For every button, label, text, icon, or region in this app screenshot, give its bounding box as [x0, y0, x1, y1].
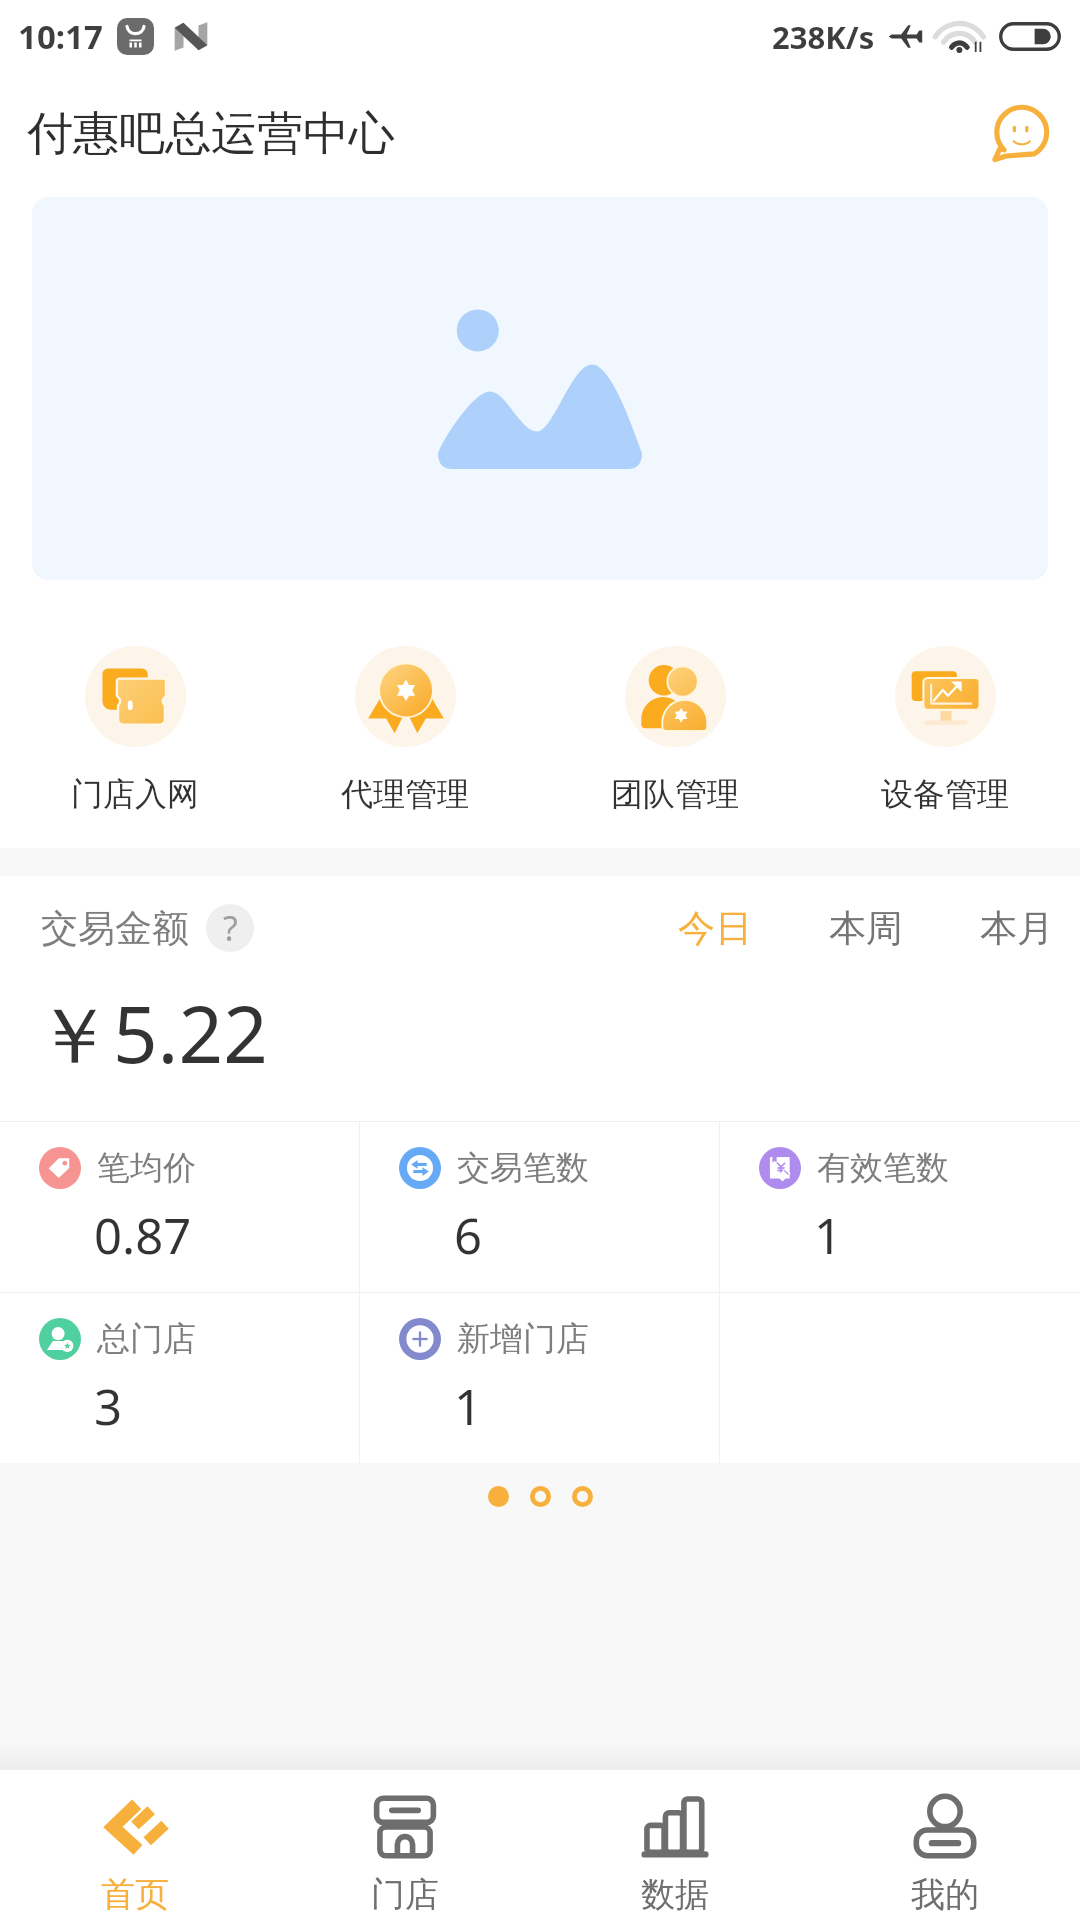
staticText: ￥5.22	[35, 980, 268, 1087]
staticText: 新增门店	[457, 1318, 589, 1360]
staticText: 数据	[641, 1873, 709, 1916]
staticText: 3	[94, 1373, 123, 1440]
button[interactable]: Help	[206, 904, 254, 952]
staticText: 本周	[829, 905, 903, 952]
button[interactable]: 本周	[829, 905, 903, 952]
button[interactable]: 新增门店	[360, 1293, 720, 1463]
button[interactable]: 总门店	[0, 1293, 360, 1463]
button[interactable]: 本月	[980, 905, 1054, 952]
staticText: 238K/s	[772, 16, 875, 58]
staticText: 1	[814, 1202, 843, 1269]
staticText: 6	[454, 1202, 483, 1269]
staticText: 1	[454, 1373, 483, 1440]
staticText: 付惠吧总运营中心	[27, 105, 395, 163]
button[interactable]: 交易笔数	[360, 1122, 720, 1292]
staticText: 10:17	[18, 14, 103, 59]
staticText: 笔均价	[97, 1147, 196, 1189]
button[interactable]: 代理管理	[270, 646, 540, 814]
button[interactable]: Customer service	[989, 103, 1051, 165]
button[interactable]: 有效笔数	[720, 1122, 1080, 1292]
staticText: 本月	[980, 905, 1054, 952]
staticText: ?	[223, 905, 238, 951]
staticText: 交易金额	[41, 905, 189, 952]
button[interactable]: Banner image	[32, 197, 1048, 580]
staticText: 总门店	[97, 1318, 196, 1360]
button[interactable]: 数据	[540, 1770, 810, 1920]
staticText: 设备管理	[881, 774, 1009, 814]
button[interactable]: 门店入网	[0, 646, 270, 814]
staticText: 门店入网	[71, 774, 199, 814]
button[interactable]: 团队管理	[540, 646, 810, 814]
button[interactable]: 今日	[678, 905, 752, 952]
staticText: 今日	[678, 905, 752, 952]
button[interactable]: 门店	[270, 1770, 540, 1920]
button[interactable]: 我的	[810, 1770, 1080, 1920]
button[interactable]: 笔均价	[0, 1122, 360, 1292]
staticText: 团队管理	[611, 774, 739, 814]
button[interactable]: 首页	[0, 1770, 270, 1920]
staticText: 交易笔数	[457, 1147, 589, 1189]
staticText: 我的	[911, 1873, 979, 1916]
staticText: 首页	[101, 1873, 169, 1916]
staticText: 门店	[371, 1873, 439, 1916]
staticText: 代理管理	[341, 774, 469, 814]
staticText: 有效笔数	[817, 1147, 949, 1189]
staticText: 0.87	[94, 1202, 192, 1269]
button[interactable]: 设备管理	[810, 646, 1080, 814]
